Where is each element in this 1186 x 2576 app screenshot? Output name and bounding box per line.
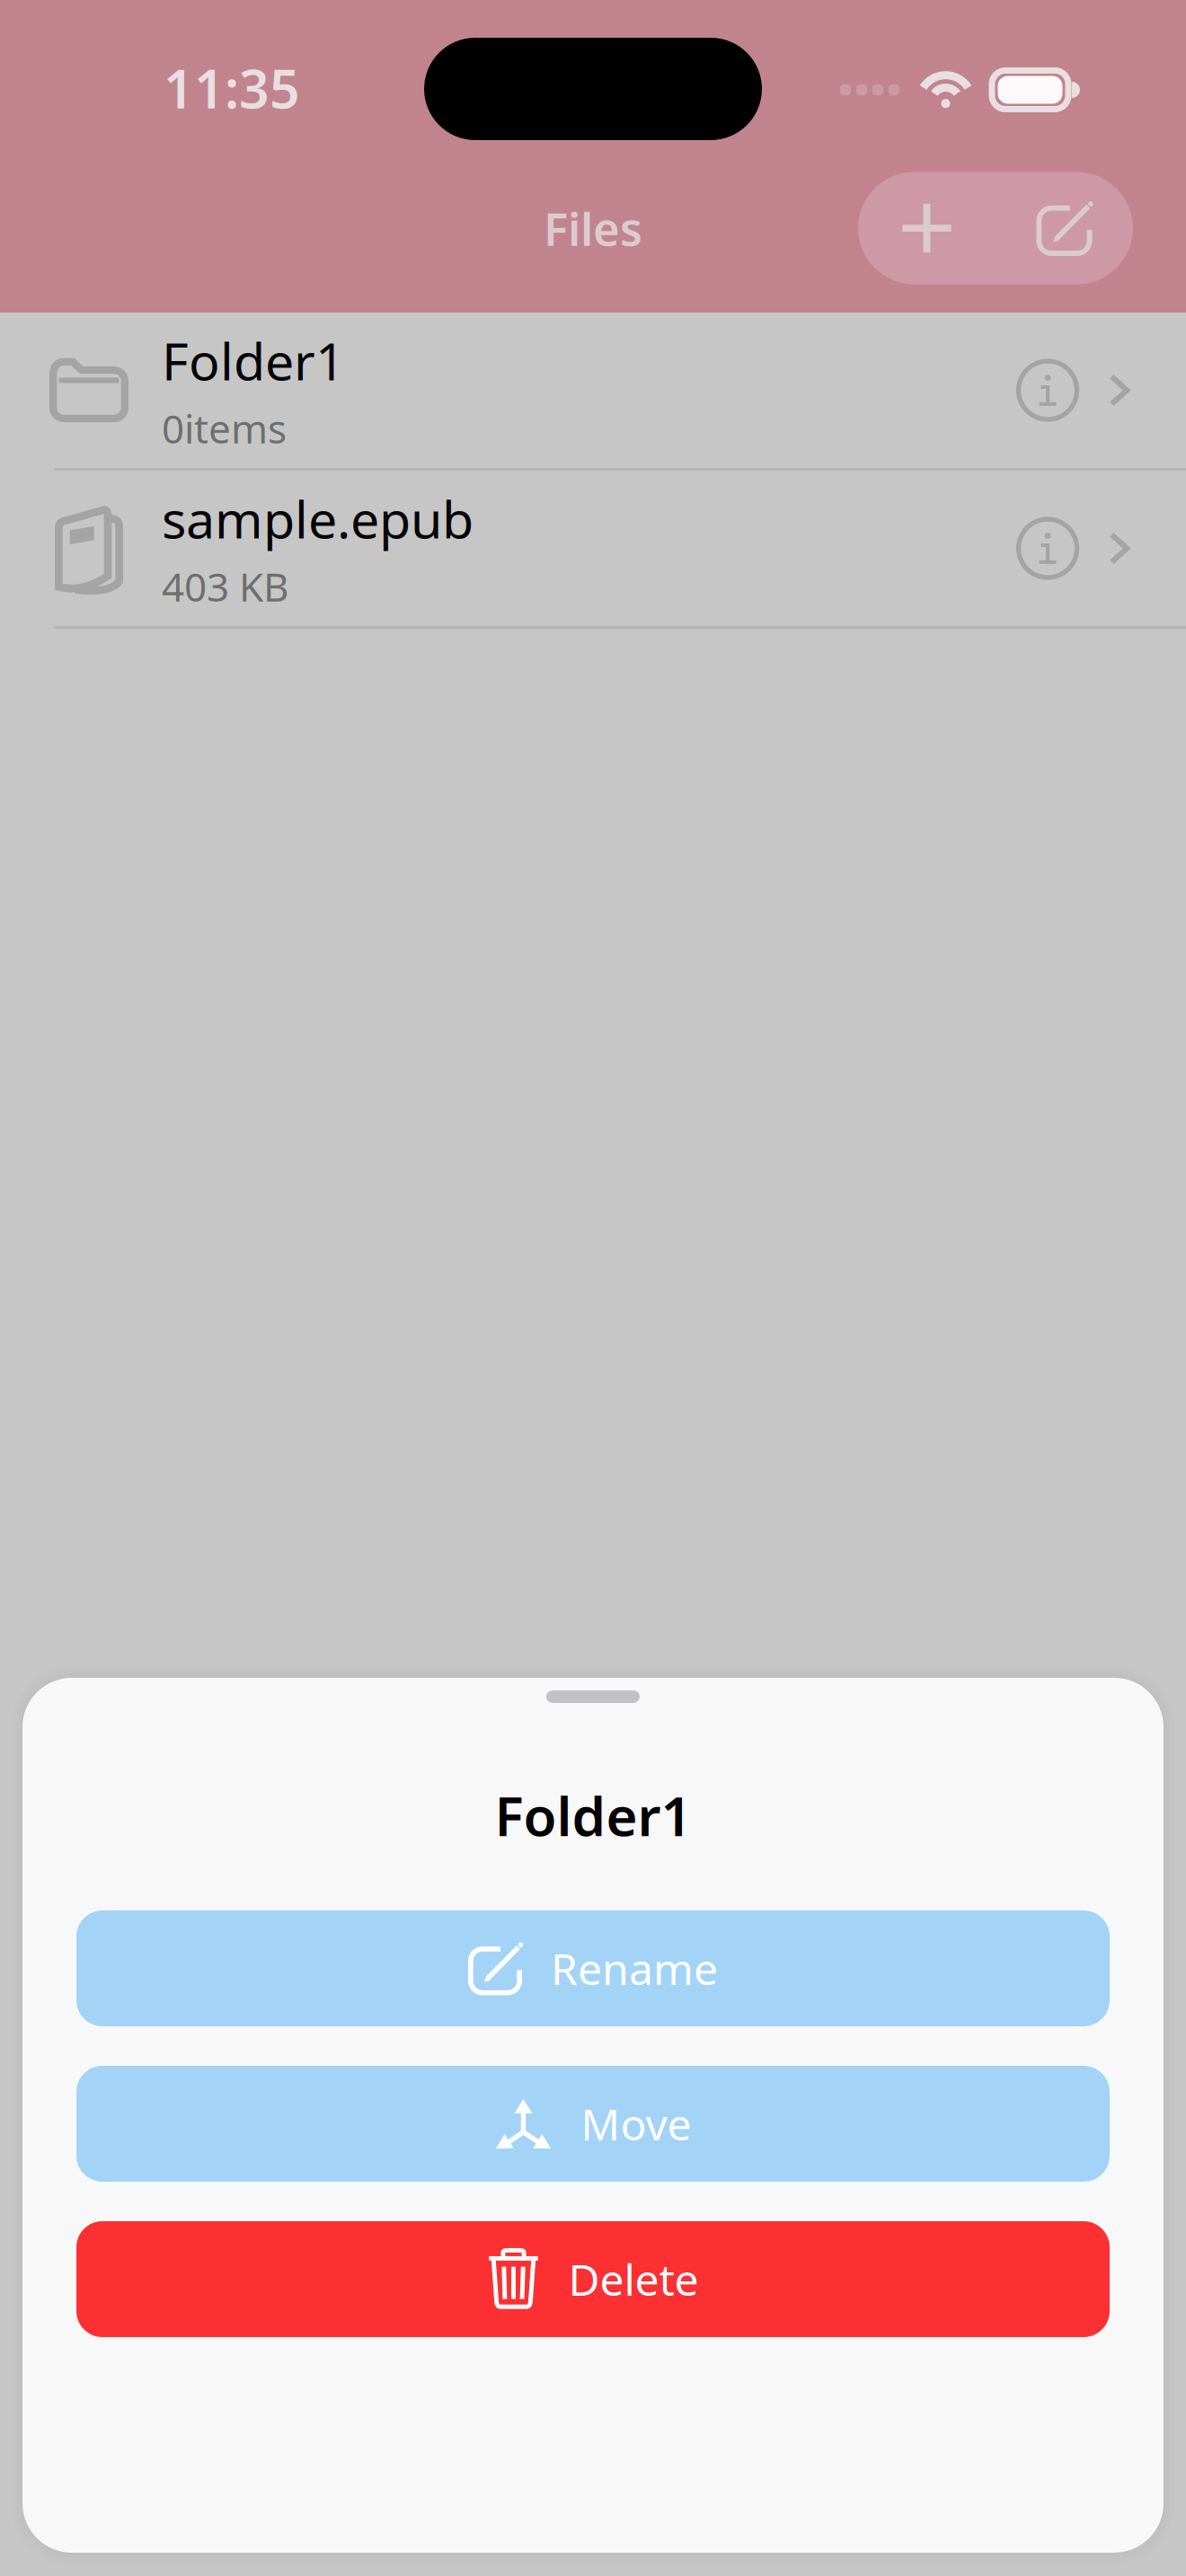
button[interactable]: Delete <box>76 2221 1110 2337</box>
staticText: Folder1 <box>495 1779 691 1851</box>
staticText: 0items <box>162 402 287 454</box>
button[interactable]: Move <box>76 2066 1110 2182</box>
button[interactable]: Compose <box>996 172 1133 284</box>
staticText: Rename <box>551 1940 718 1997</box>
staticText: Move <box>581 2095 691 2152</box>
staticText: Folder1 <box>162 326 345 395</box>
staticText: sample.epub <box>162 484 474 553</box>
button[interactable]: New Folder <box>858 172 996 284</box>
staticText: 11:35 <box>164 53 300 123</box>
staticText: 403 KB <box>162 560 289 612</box>
button[interactable]: sample.epub <box>0 471 1186 629</box>
staticText: Files <box>544 198 642 258</box>
staticText: Delete <box>568 2250 699 2308</box>
button[interactable]: Rename <box>76 1910 1110 2026</box>
button[interactable]: Folder1 <box>0 313 1186 471</box>
